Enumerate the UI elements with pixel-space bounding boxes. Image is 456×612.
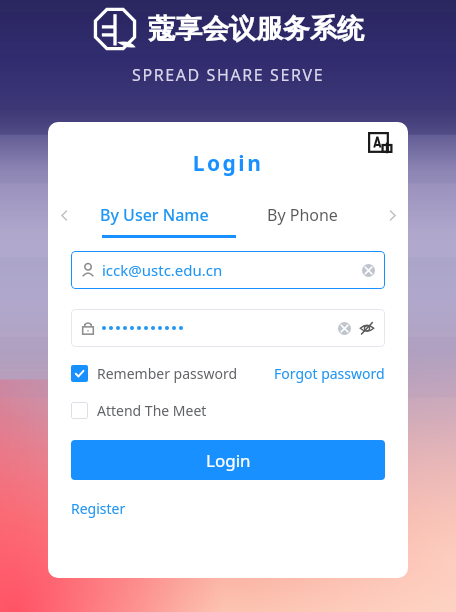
staticText: Login	[206, 449, 251, 472]
button[interactable]: Clear	[362, 264, 375, 277]
button[interactable]: By Phone	[228, 200, 376, 230]
staticText: Login	[48, 149, 408, 178]
staticText: 蔻享会议服务系统	[148, 12, 364, 46]
button[interactable]: Clear	[71, 309, 385, 347]
button[interactable]: Next tab	[376, 200, 408, 230]
button[interactable]: Forgot password	[274, 364, 385, 383]
staticText: Remember password	[97, 364, 238, 383]
button[interactable]: Clear	[338, 322, 351, 335]
staticText: By Phone	[267, 204, 338, 226]
staticText: By User Name	[100, 204, 209, 226]
staticText: Attend The Meet	[97, 401, 207, 420]
button[interactable]: Register	[71, 499, 126, 518]
button[interactable]: Show password	[359, 320, 375, 336]
button[interactable]: Switch language	[364, 128, 398, 162]
button[interactable]: Login	[71, 440, 385, 480]
staticText: SPREAD SHARE SERVE	[132, 64, 325, 86]
staticText: icck@ustc.edu.cn	[102, 260, 362, 280]
button[interactable]: Attend The Meet	[71, 401, 207, 420]
button[interactable]: By User Name	[80, 200, 228, 230]
button[interactable]: Previous tab	[48, 200, 80, 230]
button[interactable]: Remember password	[71, 364, 238, 383]
button[interactable]: icck@ustc.edu.cn	[71, 251, 385, 289]
